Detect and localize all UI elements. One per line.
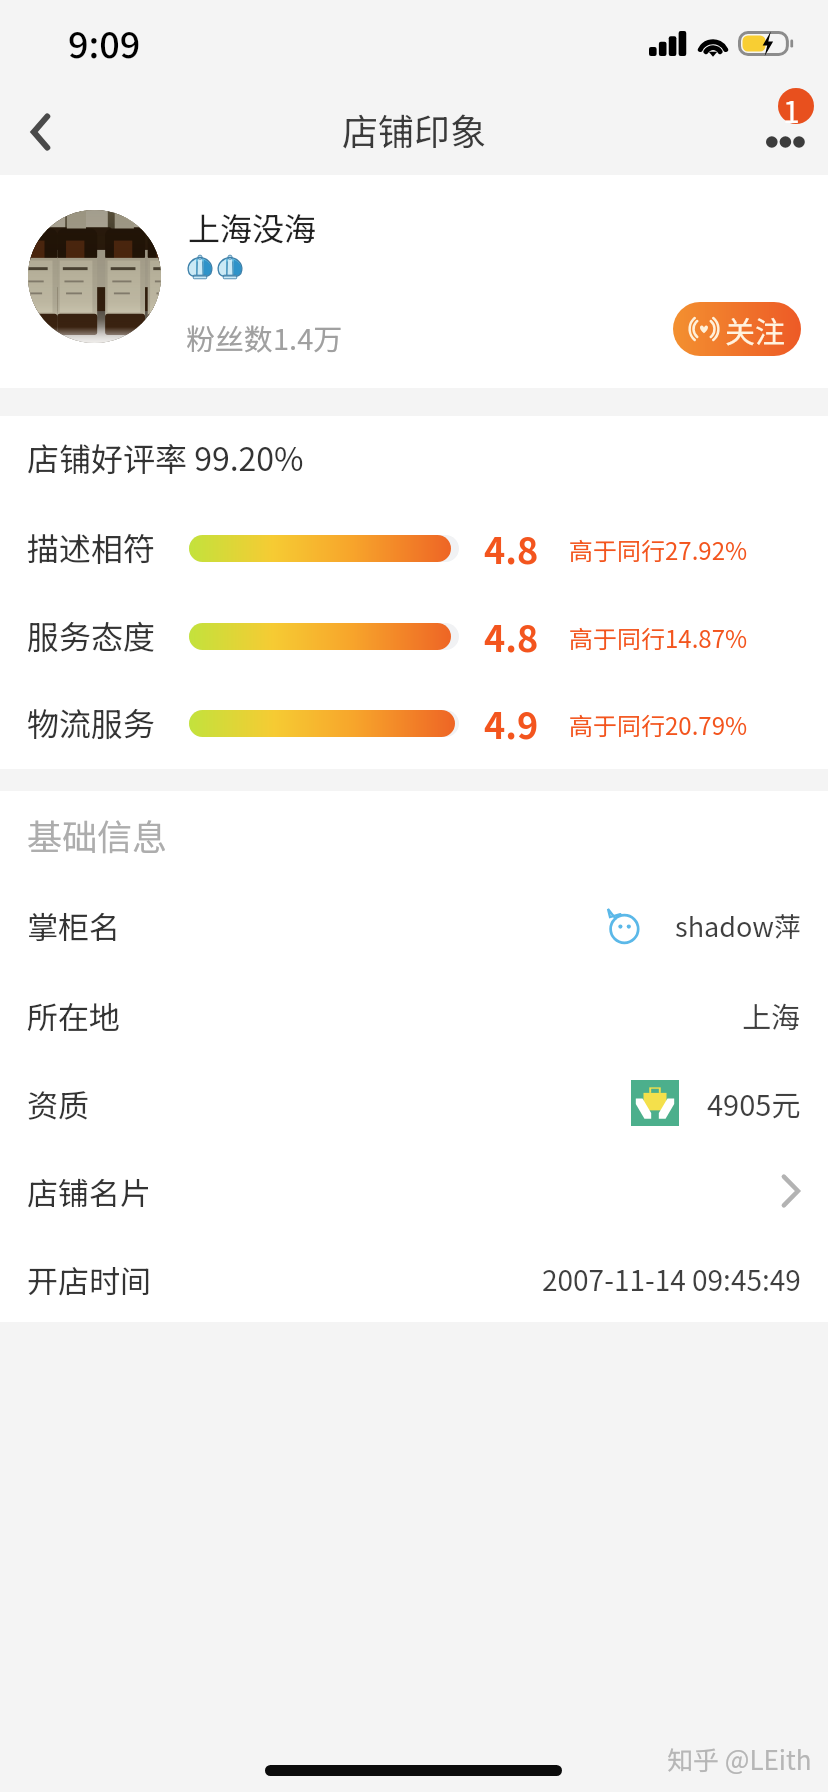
staticText: 资质 [27,1081,89,1126]
staticText: 高于同行14.87% [569,620,748,655]
staticText: 物流服务 [27,699,156,745]
staticText: 4905元 [707,1082,801,1124]
button[interactable]: 掌柜名 [0,881,828,969]
button[interactable]: 店铺名片 [0,1147,828,1235]
staticText: 高于同行27.92% [569,532,748,567]
button[interactable] [0,175,660,388]
button[interactable]: 关注 [673,302,801,356]
staticText: 知乎 @LEith [667,1740,812,1778]
staticText: 描述相符 [27,524,156,570]
staticText: 4.9 [484,697,539,749]
button[interactable]: Back [0,88,88,175]
staticText: 关注 [725,308,785,351]
staticText: 4.8 [484,522,539,574]
staticText: 1 [783,88,800,131]
button[interactable]: 资质 [0,1059,828,1147]
staticText: 开店时间 [27,1257,151,1302]
staticText: 掌柜名 [27,903,120,948]
staticText: 所在地 [27,993,120,1038]
button[interactable]: More options [718,88,828,175]
staticText: 基础信息 [27,809,168,860]
button[interactable]: 开店时间 [0,1235,828,1323]
button[interactable]: Shop avatar [28,210,161,343]
staticText: 高于同行20.79% [569,707,748,742]
staticText: 2007-11-14 09:45:49 [542,1259,801,1300]
staticText: shadow萍 [675,906,801,945]
staticText: 上海 [742,994,801,1036]
button[interactable]: 所在地 [0,971,828,1059]
staticText: 店铺名片 [27,1169,151,1214]
staticText: 店铺好评率 99.20% [27,434,304,480]
staticText: 服务态度 [27,612,156,658]
staticText: 9:09 [68,16,141,68]
staticText: 店铺印象 [342,103,487,155]
staticText: 上海没海 [188,204,317,250]
staticText: 粉丝数1.4万 [186,316,343,358]
staticText: 4.8 [484,610,539,662]
